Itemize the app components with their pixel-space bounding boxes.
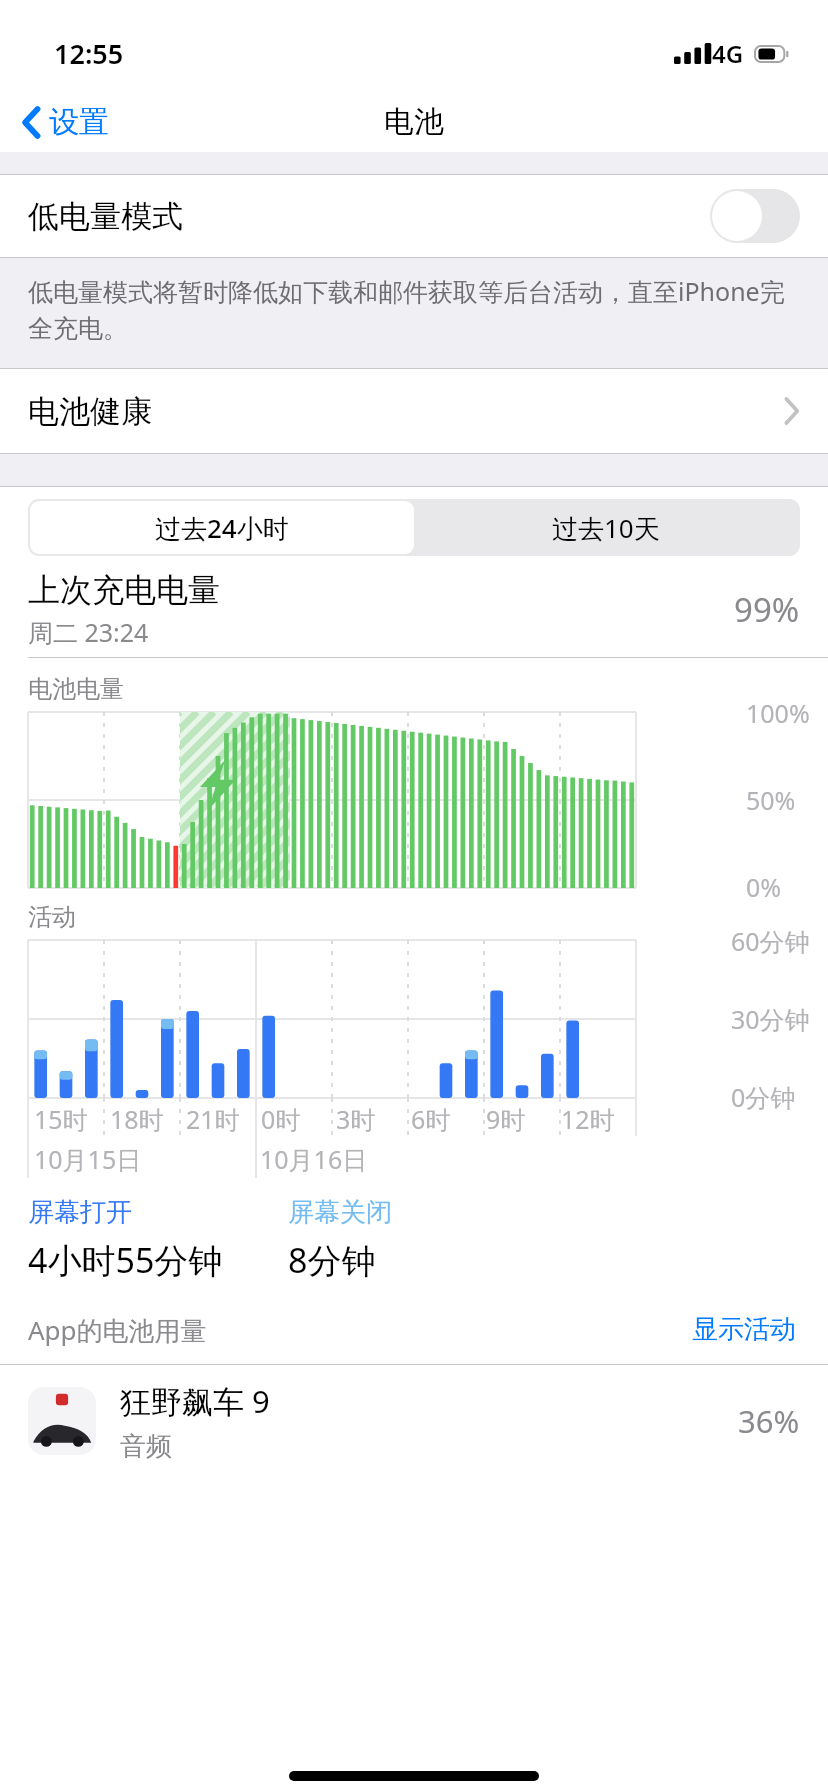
- staticText: 15时: [34, 1102, 88, 1136]
- staticText: 12时: [561, 1102, 615, 1136]
- staticText: 0%: [746, 870, 782, 904]
- staticText: 100%: [746, 696, 810, 730]
- staticText: 狂野飙车 9: [120, 1380, 270, 1422]
- staticText: 6时: [411, 1102, 451, 1136]
- staticText: 低电量模式: [28, 197, 183, 236]
- button[interactable]: 过去10天: [414, 501, 798, 554]
- button[interactable]: 显示活动: [688, 1309, 800, 1350]
- staticText: 10月16日: [260, 1142, 368, 1176]
- staticText: 屏幕打开: [28, 1196, 132, 1229]
- staticText: 上次充电电量: [28, 570, 220, 610]
- staticText: 音频: [120, 1430, 172, 1463]
- staticText: 低电量模式将暂时降低如下载和邮件获取等后台活动，直至iPhone完全充电。: [28, 274, 788, 344]
- staticText: 36%: [738, 1400, 800, 1442]
- staticText: 活动: [28, 902, 76, 932]
- staticText: 30分钟: [731, 1002, 810, 1036]
- staticText: 99%: [734, 587, 800, 632]
- staticText: 过去10天: [552, 510, 660, 546]
- staticText: 9时: [486, 1102, 526, 1136]
- button[interactable]: 过去24小时: [30, 501, 414, 554]
- staticText: 4G: [712, 37, 744, 70]
- staticText: 电池: [384, 103, 444, 141]
- staticText: 50%: [746, 783, 796, 817]
- staticText: App的电池用量: [28, 1312, 207, 1348]
- staticText: 60分钟: [731, 924, 810, 958]
- staticText: 10月15日: [34, 1142, 142, 1176]
- staticText: 设置: [49, 103, 109, 141]
- staticText: 过去24小时: [155, 510, 289, 546]
- staticText: 屏幕关闭: [288, 1196, 392, 1229]
- staticText: 3时: [336, 1102, 376, 1136]
- button[interactable]: 低电量模式: [0, 175, 828, 257]
- button[interactable]: 狂野飙车 9: [0, 1365, 828, 1477]
- staticText: 21时: [186, 1102, 240, 1136]
- button[interactable]: 电池健康: [0, 369, 828, 453]
- staticText: 12:55: [54, 35, 124, 72]
- staticText: 18时: [110, 1102, 164, 1136]
- staticText: 周二 23:24: [28, 615, 149, 649]
- staticText: 显示活动: [692, 1313, 796, 1346]
- staticText: 0时: [261, 1102, 301, 1136]
- staticText: 4小时55分钟: [28, 1237, 223, 1283]
- staticText: 0分钟: [731, 1080, 796, 1114]
- button[interactable]: 设置: [0, 92, 123, 152]
- staticText: 电池健康: [28, 392, 152, 431]
- staticText: 电池电量: [28, 674, 124, 704]
- staticText: 8分钟: [288, 1237, 376, 1283]
- button[interactable]: 低电量模式 开关: [710, 189, 800, 243]
